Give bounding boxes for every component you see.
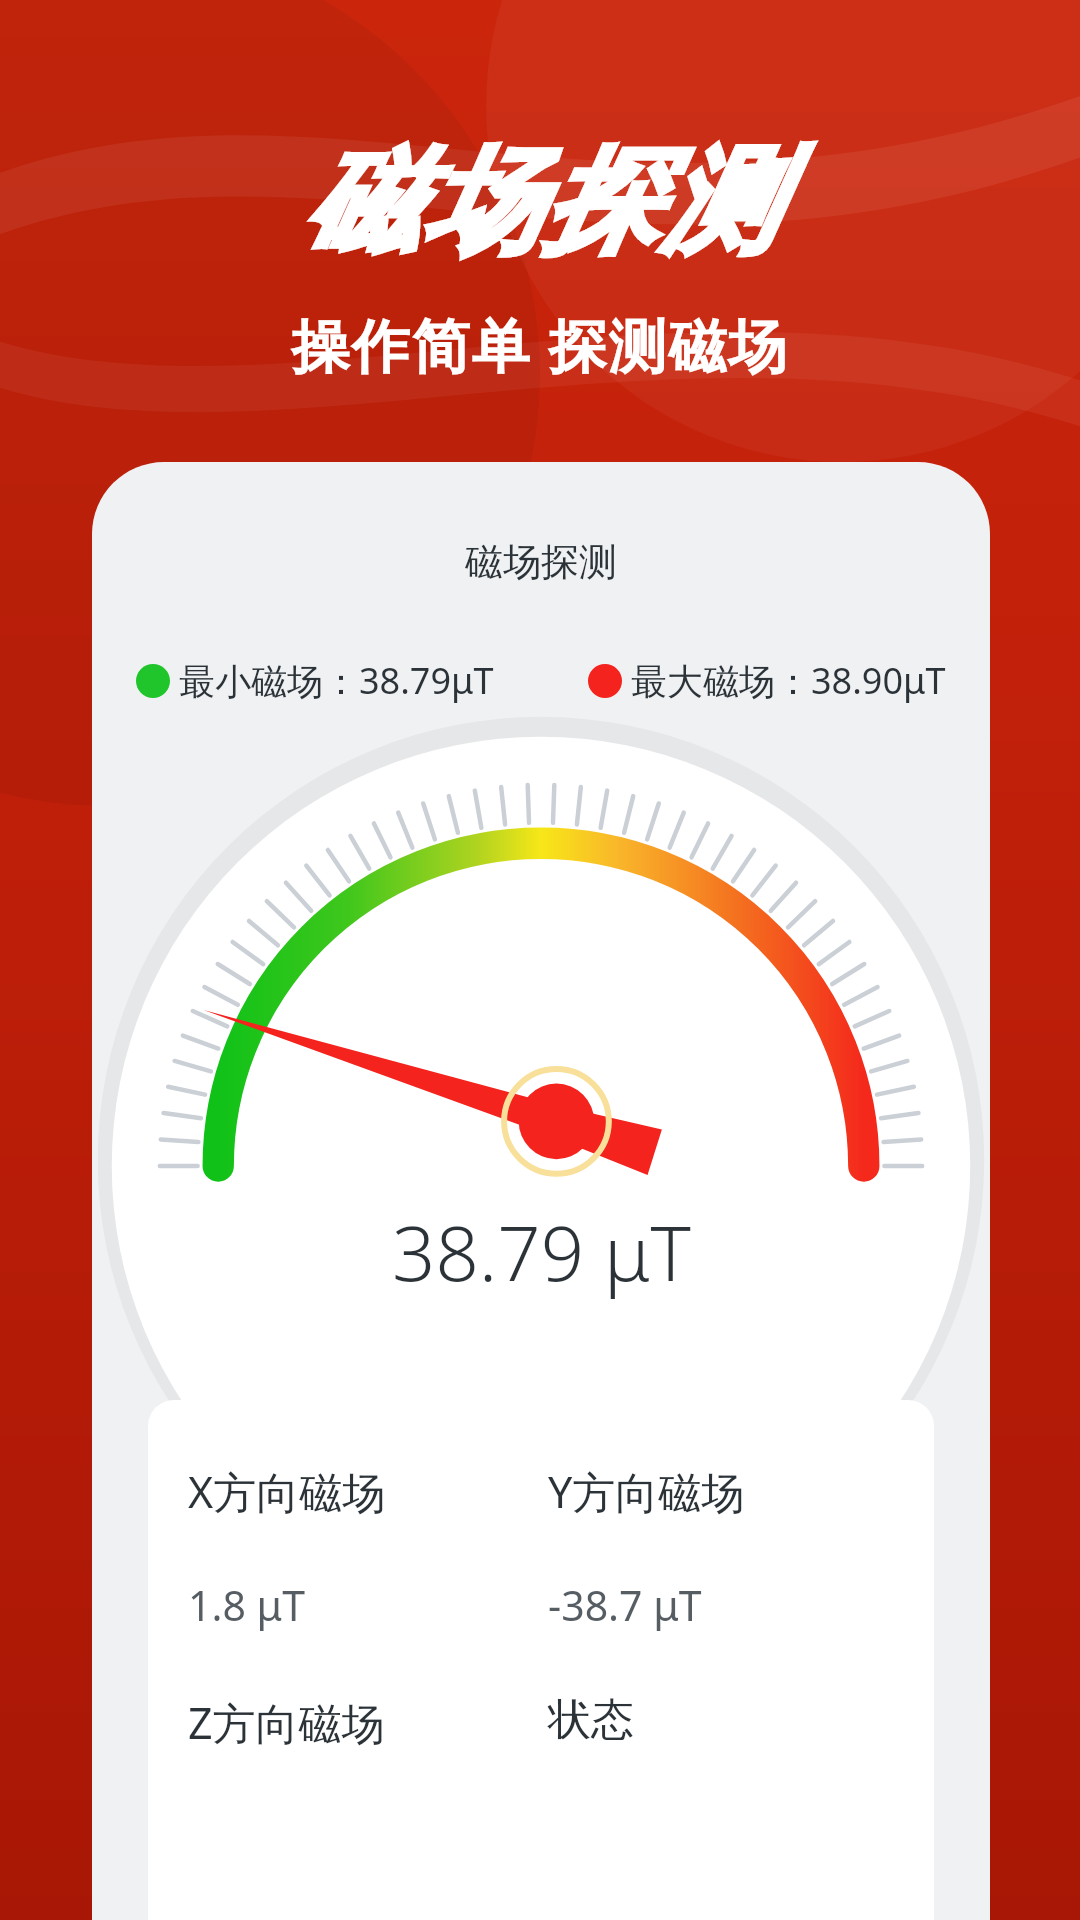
button[interactable]: 磁场探测 xyxy=(465,538,617,586)
button[interactable]: X方向磁场 xyxy=(148,1400,934,1920)
staticText: -38.7 μT xyxy=(548,1577,702,1633)
staticText: 最小磁场：38.79μT xyxy=(179,656,494,705)
staticText: 最大磁场：38.90μT xyxy=(631,656,946,705)
staticText: 1.8 μT xyxy=(188,1577,306,1633)
staticText: 磁场探测 xyxy=(302,130,778,275)
staticText: Y方向磁场 xyxy=(548,1462,745,1521)
staticText: X方向磁场 xyxy=(188,1462,386,1521)
staticText: 状态 xyxy=(548,1693,634,1747)
staticText: 38.79 μT xyxy=(392,1200,691,1304)
button[interactable]: 最大磁场：38.90μT xyxy=(588,656,946,705)
button[interactable]: 最小磁场：38.79μT xyxy=(136,656,494,705)
staticText: Z方向磁场 xyxy=(188,1693,385,1752)
other: Magnetic field gauge xyxy=(92,771,990,1166)
staticText: 操作简单 探测磁场 xyxy=(291,305,789,384)
